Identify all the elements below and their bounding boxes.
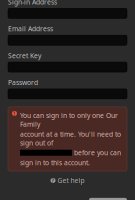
staticText: Email Address (8, 24, 53, 33)
staticText: You can sign in to only one Our Family (20, 111, 118, 129)
staticText: Sign-in Address (8, 0, 57, 6)
staticText: ! (13, 110, 15, 117)
staticText: sign in to this account. (20, 158, 90, 167)
staticText: Password (8, 78, 38, 87)
staticText: ? (51, 177, 54, 184)
staticText: Secret Key (8, 51, 41, 60)
staticText: account at a time. You'll need to sign o… (20, 130, 121, 147)
staticText: before you can (74, 148, 121, 157)
staticText: Get help (57, 176, 84, 185)
button[interactable]: ? (0, 171, 135, 190)
button[interactable]: Sign In (89, 198, 127, 200)
